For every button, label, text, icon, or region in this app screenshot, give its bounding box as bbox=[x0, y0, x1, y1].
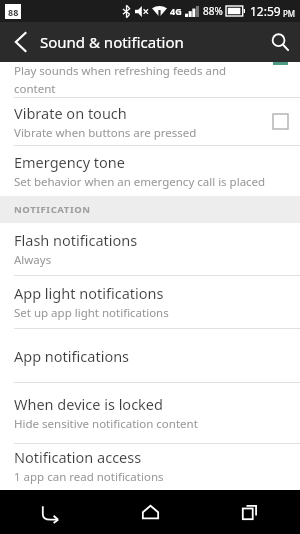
staticText: Flash notifications bbox=[14, 230, 138, 250]
button[interactable]: Emergency tone bbox=[0, 146, 300, 196]
staticText: Always bbox=[14, 252, 52, 268]
staticText: Set up app light notifications bbox=[14, 305, 169, 321]
button[interactable]: App light notifications bbox=[0, 276, 300, 328]
button[interactable]: Home bbox=[100, 490, 200, 534]
staticText: Play sounds when refreshing feeds and bbox=[14, 63, 227, 79]
staticText: Hide sensitive notification content bbox=[14, 416, 198, 432]
staticText: content bbox=[14, 81, 56, 97]
button[interactable]: Back bbox=[0, 22, 40, 62]
button[interactable]: Play sounds when refreshing feeds and bbox=[0, 62, 300, 97]
button[interactable]: App notifications bbox=[0, 329, 300, 382]
staticText: Emergency tone bbox=[14, 152, 125, 172]
staticText: When device is locked bbox=[14, 394, 163, 414]
staticText: Set behavior when an emergency call is p… bbox=[14, 174, 266, 190]
staticText: 12:59 bbox=[250, 3, 281, 19]
staticText: 88 bbox=[8, 6, 19, 18]
staticText: 88% bbox=[203, 4, 223, 18]
staticText: Vibrate on touch bbox=[14, 103, 127, 123]
staticText: App light notifications bbox=[14, 283, 164, 303]
button[interactable]: When device is locked bbox=[0, 383, 300, 443]
button[interactable]: Notification access bbox=[0, 444, 300, 488]
staticText: 1 app can read notifications bbox=[14, 469, 164, 485]
button[interactable]: Back bbox=[0, 490, 100, 534]
staticText: Notification access bbox=[14, 447, 142, 467]
button[interactable]: Search bbox=[260, 22, 300, 62]
staticText: Sound & notification bbox=[40, 32, 184, 52]
button[interactable]: Vibrate on touch bbox=[0, 98, 300, 145]
staticText: NOTIFICATION bbox=[14, 203, 91, 216]
staticText: PM bbox=[283, 8, 296, 19]
button[interactable]: Flash notifications bbox=[0, 223, 300, 275]
staticText: App notifications bbox=[14, 346, 130, 366]
button[interactable]: Recent apps bbox=[200, 490, 300, 534]
staticText: 4G bbox=[170, 5, 182, 17]
staticText: Vibrate when buttons are pressed bbox=[14, 125, 197, 141]
